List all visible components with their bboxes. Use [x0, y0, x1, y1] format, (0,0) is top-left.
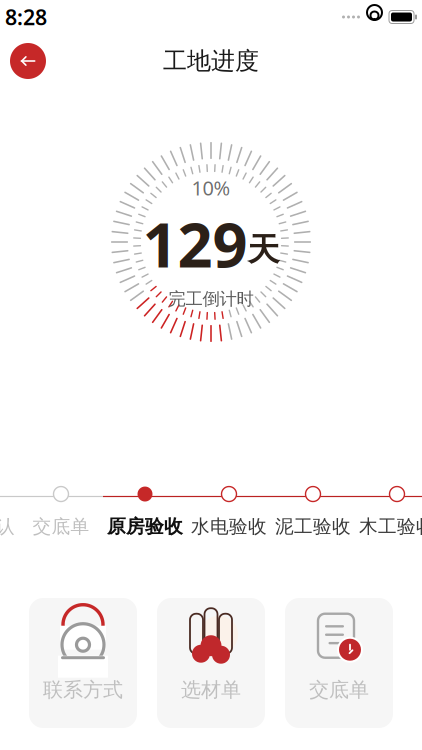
staticText: 完工倒计时 [168, 288, 253, 310]
button[interactable]: 泥工验收 [271, 486, 355, 538]
button[interactable]: 联系方式 [29, 598, 137, 728]
staticText: 原房验收 [107, 515, 183, 538]
staticText: 129 [142, 203, 247, 284]
staticText: 8:28 [5, 3, 47, 31]
button[interactable]: 水电验收 [187, 486, 271, 538]
button[interactable]: Back [6, 39, 50, 83]
button[interactable]: 交底单 [19, 486, 103, 538]
staticText: 选材单 [181, 677, 241, 702]
button[interactable]: 原房验收 [103, 486, 187, 538]
staticText: 木工验收 [359, 515, 422, 538]
button[interactable]: 开工确认 [0, 486, 19, 538]
staticText: 10% [191, 174, 230, 201]
button[interactable]: 木工验收 [355, 486, 422, 538]
button[interactable]: 选材单 [157, 598, 265, 728]
staticText: 天 [247, 230, 279, 269]
staticText: 工地进度 [163, 46, 259, 76]
staticText: 交底单 [32, 515, 89, 538]
staticText: 泥工验收 [275, 515, 351, 538]
staticText: 水电验收 [191, 515, 267, 538]
button[interactable]: 交底单 [285, 598, 393, 728]
staticText: 开工确认 [0, 515, 15, 538]
staticText: 联系方式 [43, 677, 123, 702]
staticText: 交底单 [309, 677, 369, 702]
